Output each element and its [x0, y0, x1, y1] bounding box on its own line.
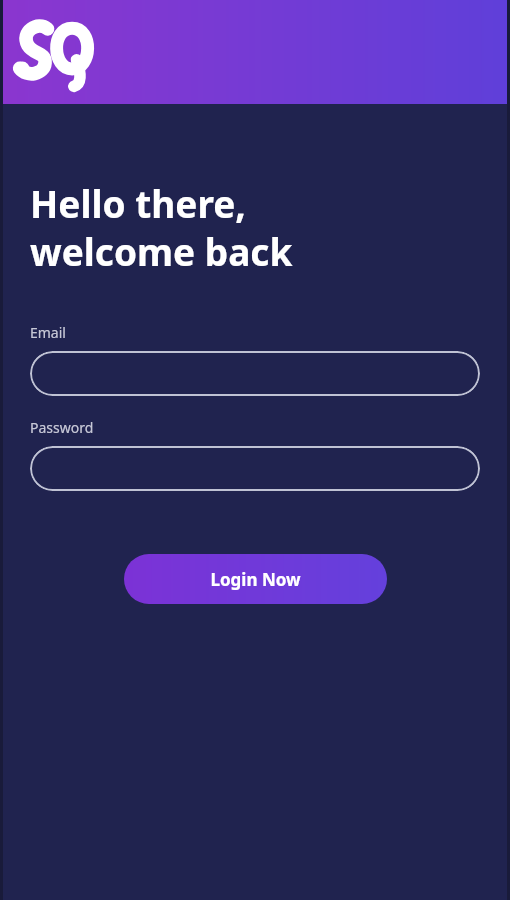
button[interactable]: Login Now — [124, 554, 387, 604]
staticText: Email — [30, 323, 66, 342]
button[interactable]: Text input field — [30, 351, 480, 396]
button[interactable]: SQ logo — [18, 18, 100, 86]
staticText: Login Now — [210, 568, 301, 591]
staticText: Password — [30, 418, 94, 437]
staticText: Hello there, welcome back — [30, 178, 293, 277]
button[interactable]: Text input field — [30, 446, 480, 491]
